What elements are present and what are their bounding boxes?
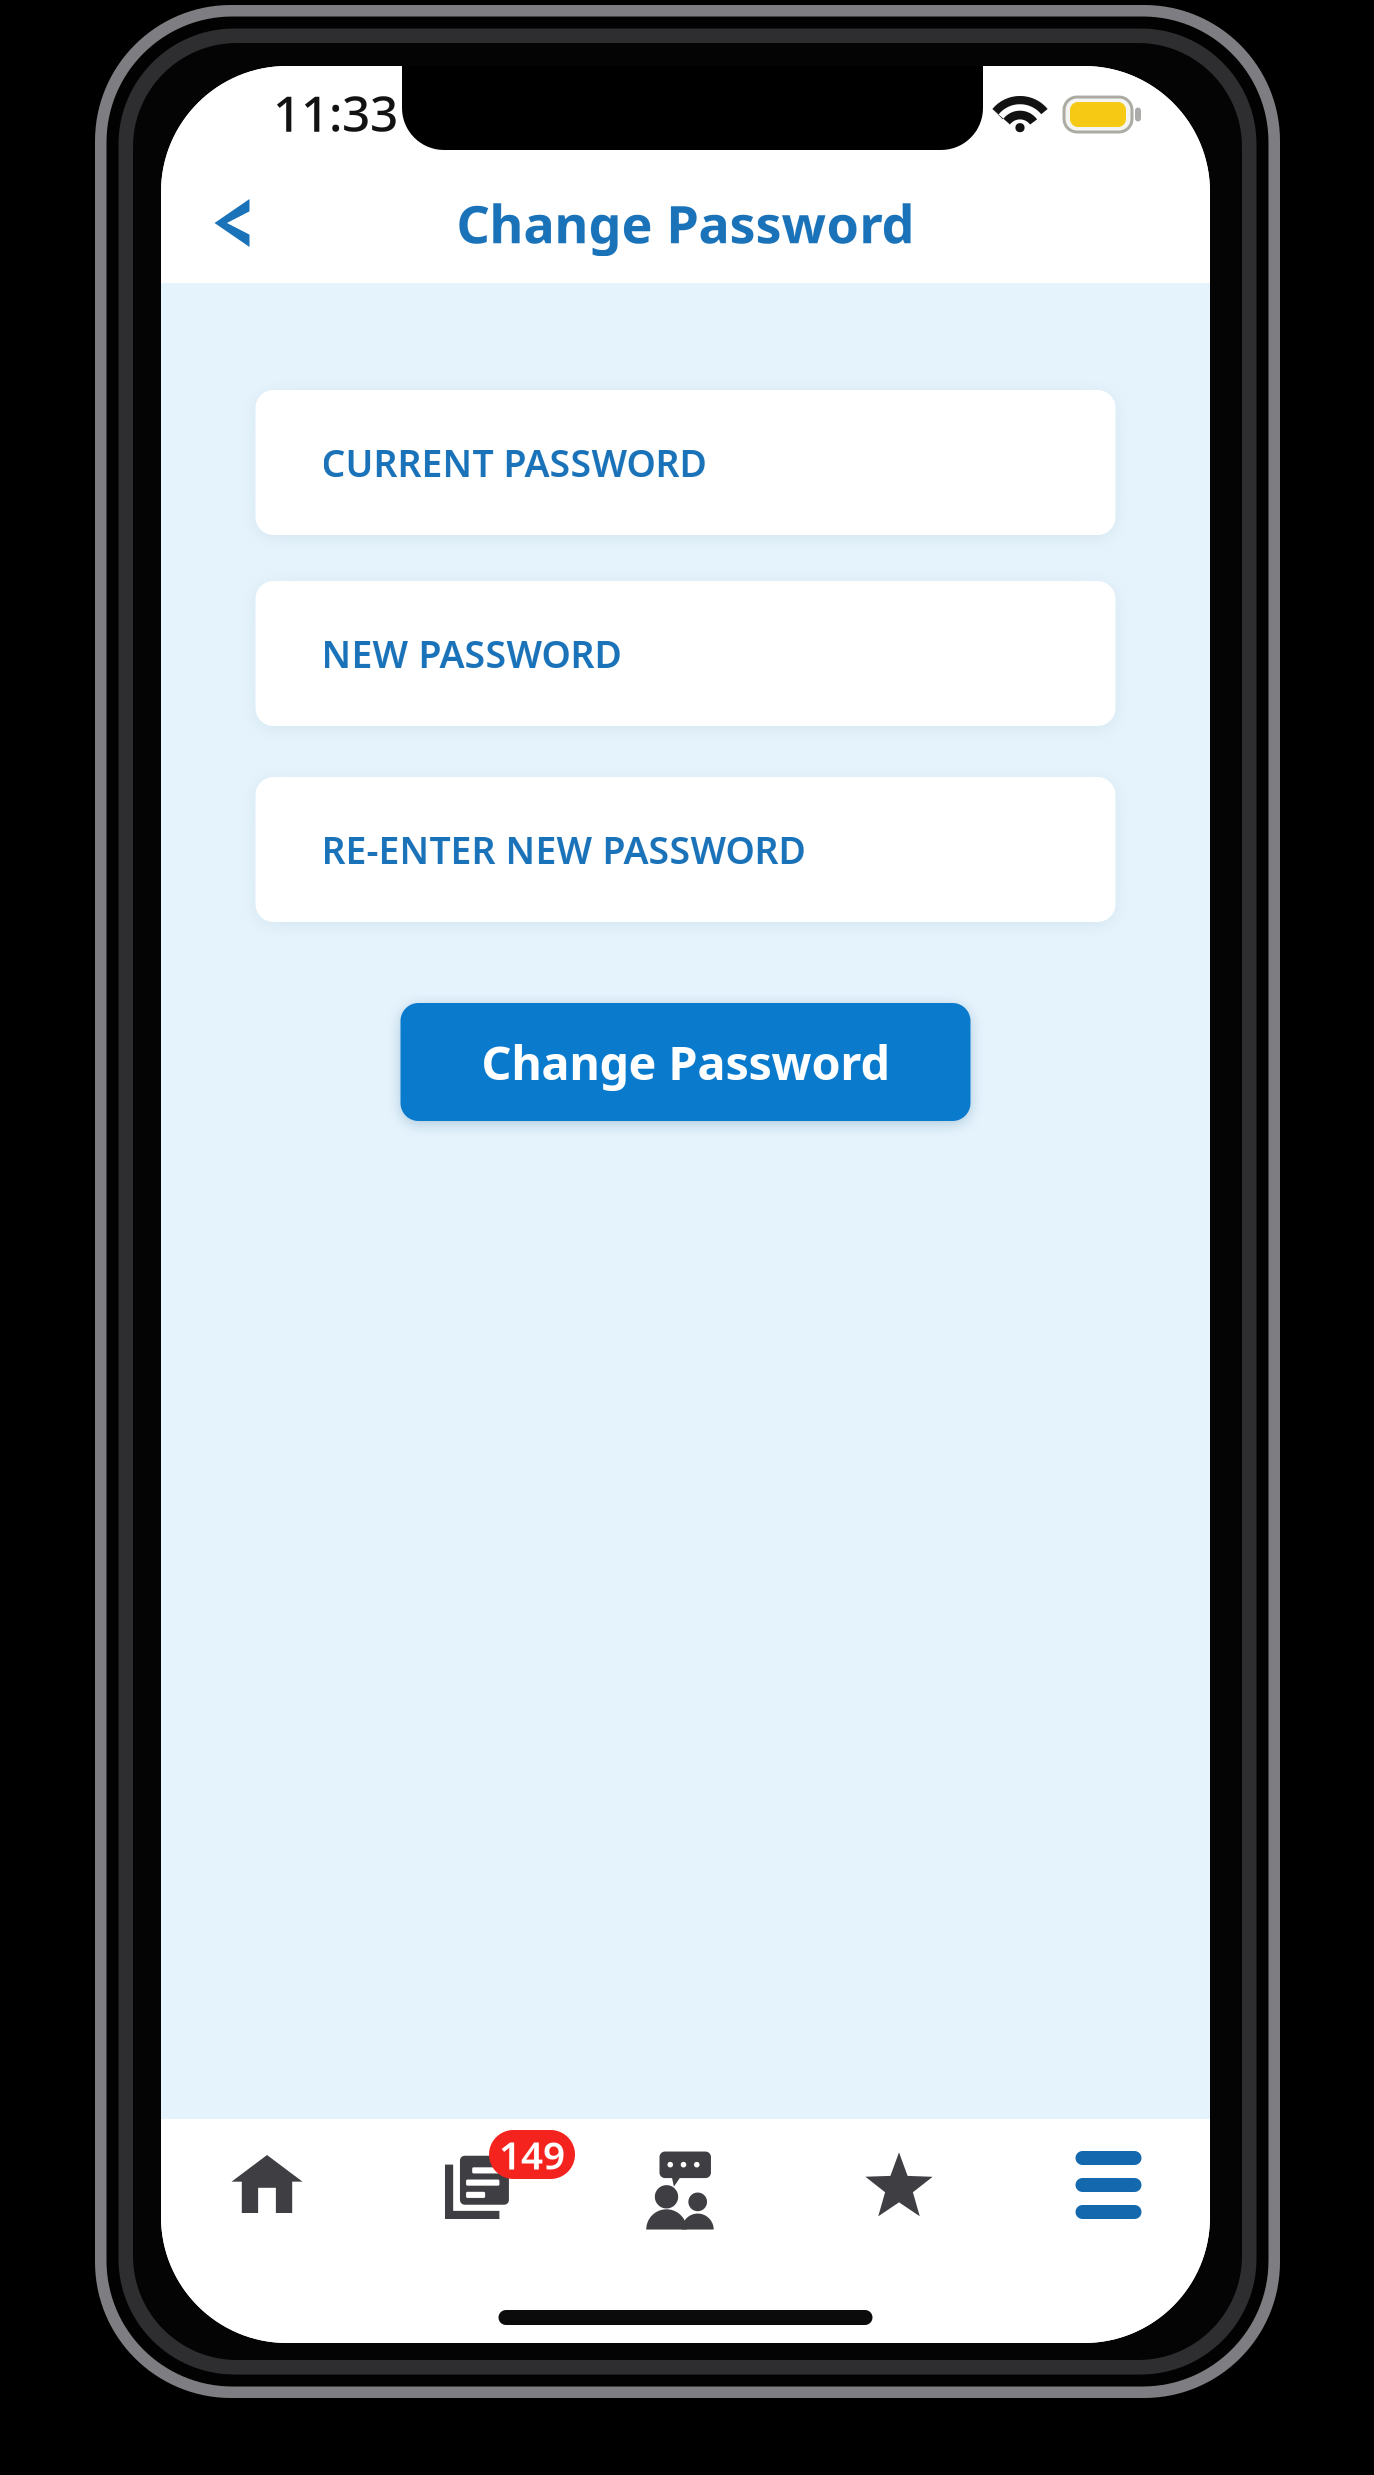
button[interactable]: Change Password (400, 1003, 970, 1121)
button[interactable]: CURRENT PASSWORD (255, 390, 1115, 535)
button[interactable]: Menu (1001, 2119, 1210, 2259)
button[interactable]: Home (161, 2119, 371, 2259)
button[interactable]: News, 149 unread (371, 2119, 581, 2259)
button[interactable]: NEW PASSWORD (255, 581, 1115, 726)
staticText: 149 (499, 2129, 565, 2180)
staticText: 11:33 (273, 80, 398, 145)
button[interactable]: Discussions (581, 2129, 791, 2249)
staticText: Change Password (481, 1031, 889, 1093)
staticText: Change Password (456, 188, 914, 258)
button[interactable]: Favorites (791, 2119, 1001, 2259)
button[interactable]: RE-ENTER NEW PASSWORD (255, 777, 1115, 922)
staticText: CURRENT PASSWORD (321, 438, 706, 487)
staticText: RE-ENTER NEW PASSWORD (321, 825, 805, 874)
staticText: NEW PASSWORD (321, 629, 621, 678)
button[interactable]: Back (161, 163, 285, 283)
